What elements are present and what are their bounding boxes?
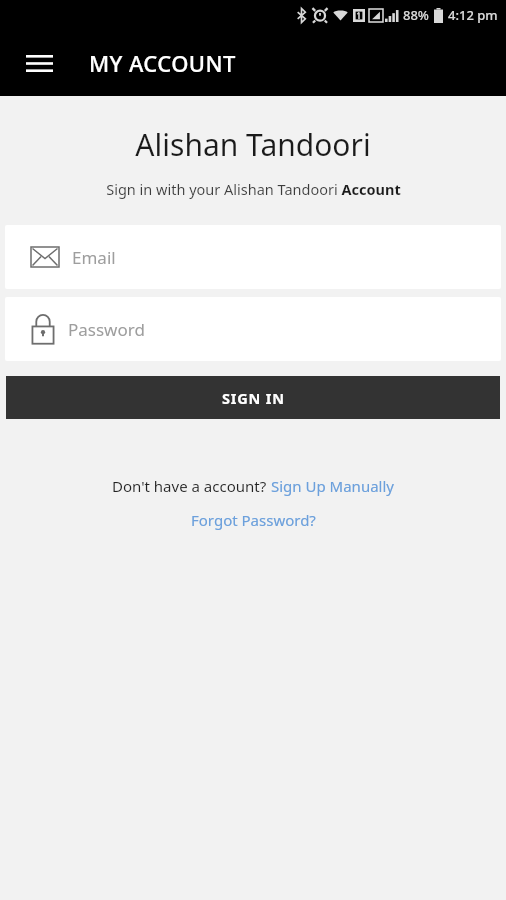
button[interactable]: Email xyxy=(5,225,501,289)
button[interactable]: Open navigation menu xyxy=(16,40,62,86)
staticText: Don't have a account? xyxy=(112,476,271,496)
button[interactable]: Password xyxy=(5,297,501,361)
staticText: 4:12 pm xyxy=(448,6,498,24)
button[interactable]: Sign Up Manually xyxy=(271,476,394,496)
button[interactable]: Forgot Password? xyxy=(191,510,316,530)
staticText: Alishan Tandoori xyxy=(135,124,371,165)
staticText: Sign Up Manually xyxy=(271,476,394,496)
staticText: Forgot Password? xyxy=(191,510,316,530)
button[interactable]: SIGN IN xyxy=(6,376,500,419)
staticText: 88% xyxy=(403,6,429,24)
staticText: MY ACCOUNT xyxy=(89,48,236,78)
staticText: Email xyxy=(72,246,116,269)
staticText: Sign in with your Alishan Tandoori Accou… xyxy=(106,179,401,199)
staticText: Password xyxy=(68,318,145,341)
staticText: SIGN IN xyxy=(222,388,285,408)
